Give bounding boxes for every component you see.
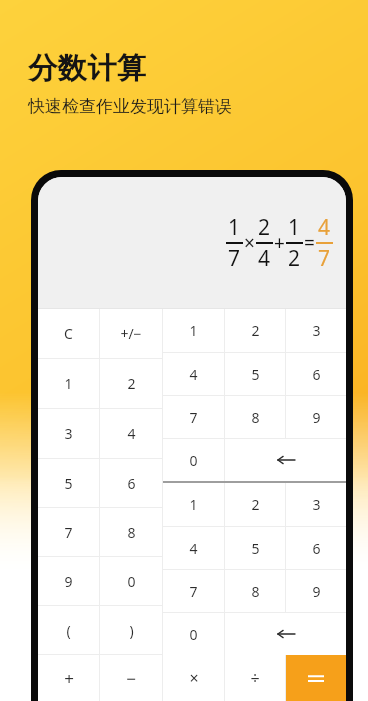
staticText: 3 (64, 424, 73, 443)
staticText: 9 (312, 582, 321, 601)
button[interactable]: 3 (286, 483, 346, 526)
staticText: 1 (228, 213, 241, 242)
button[interactable]: 2 (100, 359, 162, 408)
button[interactable]: 6 (286, 353, 346, 395)
button[interactable]: 1 (38, 359, 99, 408)
button[interactable]: 6 (100, 459, 162, 507)
button[interactable]: ( (38, 606, 99, 654)
staticText: 4 (258, 244, 271, 273)
staticText: = (304, 230, 315, 256)
staticText: 1 (189, 495, 198, 514)
staticText: 0 (127, 572, 136, 591)
staticText: 2 (127, 374, 136, 393)
staticText: 6 (127, 474, 136, 493)
staticText: 快速检查作业发现计算错误 (28, 96, 232, 117)
staticText: 0 (189, 451, 198, 470)
staticText: 2 (251, 321, 260, 340)
staticText: 7 (189, 408, 198, 427)
button[interactable]: 5 (225, 527, 285, 569)
staticText: 2 (251, 495, 260, 514)
button[interactable]: 9 (38, 557, 99, 605)
staticText: 0 (189, 625, 198, 644)
button[interactable]: 0 (163, 439, 224, 481)
button[interactable]: × (163, 655, 224, 701)
button[interactable]: 4 (100, 409, 162, 458)
staticText: 9 (312, 408, 321, 427)
staticText: 1 (64, 374, 73, 393)
staticText: 5 (64, 474, 73, 493)
staticText: 3 (312, 321, 321, 340)
staticText: 1 (288, 213, 301, 242)
staticText: C (64, 324, 73, 343)
button[interactable]: 8 (225, 396, 285, 438)
staticText: 1 (189, 321, 198, 340)
button[interactable]: Backspace (225, 439, 346, 481)
button[interactable]: 1 (163, 483, 224, 526)
button[interactable]: − (100, 655, 162, 701)
staticText: + (274, 230, 285, 256)
staticText: 7 (64, 523, 73, 542)
button[interactable]: ÷ (225, 655, 285, 701)
staticText: × (244, 230, 255, 256)
staticText: 4 (189, 539, 198, 558)
staticText: 5 (251, 539, 260, 558)
staticText: 4 (127, 424, 136, 443)
button[interactable]: 0 (163, 613, 224, 655)
button[interactable]: + (38, 655, 99, 701)
staticText: 7 (318, 244, 331, 273)
button[interactable]: 9 (286, 396, 346, 438)
button[interactable]: ) (100, 606, 162, 654)
button[interactable]: 6 (286, 527, 346, 569)
staticText: 2 (258, 213, 271, 242)
staticText: 4 (189, 365, 198, 384)
button[interactable]: 1 (163, 309, 224, 352)
staticText: 8 (251, 582, 260, 601)
staticText: +/− (120, 324, 142, 343)
button[interactable]: +/− (100, 309, 162, 358)
staticText: 7 (228, 244, 241, 273)
button[interactable]: 7 (163, 570, 224, 612)
staticText: 6 (312, 365, 321, 384)
button[interactable]: 4 (163, 527, 224, 569)
button[interactable]: 8 (100, 508, 162, 556)
staticText: ÷ (250, 667, 260, 689)
staticText: 5 (251, 365, 260, 384)
staticText: 2 (288, 244, 301, 273)
staticText: − (126, 667, 136, 690)
button[interactable]: C (38, 309, 99, 358)
button[interactable]: Backspace (225, 613, 346, 655)
button[interactable]: 7 (38, 508, 99, 556)
button[interactable]: 3 (286, 309, 346, 352)
button[interactable]: 9 (286, 570, 346, 612)
staticText: 4 (318, 213, 331, 242)
button[interactable]: 2 (225, 309, 285, 352)
staticText: ) (129, 621, 134, 640)
staticText: 3 (312, 495, 321, 514)
staticText: 6 (312, 539, 321, 558)
button[interactable]: 2 (225, 483, 285, 526)
button[interactable]: 0 (100, 557, 162, 605)
staticText: 7 (189, 582, 198, 601)
button[interactable]: 5 (225, 353, 285, 395)
staticText: × (189, 667, 199, 689)
staticText: + (64, 667, 74, 690)
staticText: 分数计算 (28, 50, 146, 87)
staticText: ( (66, 621, 71, 640)
staticText: 8 (251, 408, 260, 427)
button[interactable]: 8 (225, 570, 285, 612)
button[interactable]: Equals (286, 655, 346, 701)
button[interactable]: 3 (38, 409, 99, 458)
staticText: 9 (64, 572, 73, 591)
button[interactable]: 7 (163, 396, 224, 438)
staticText: 8 (127, 523, 136, 542)
button[interactable]: 5 (38, 459, 99, 507)
button[interactable]: 4 (163, 353, 224, 395)
